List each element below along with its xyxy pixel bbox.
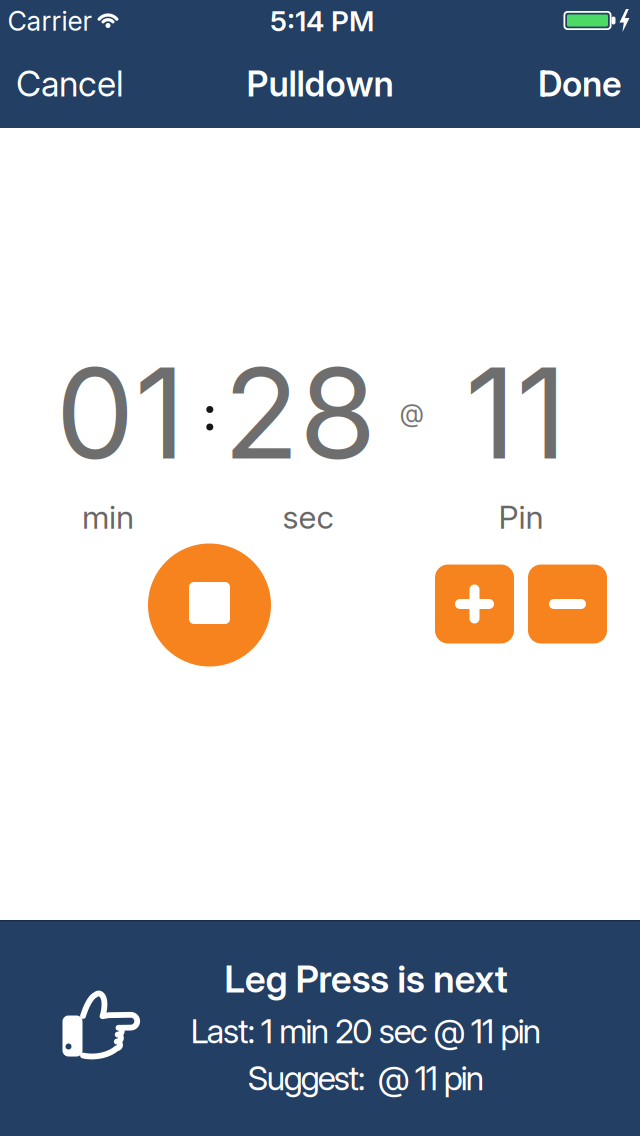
staticText: Done [538, 64, 622, 104]
staticText: Suggest: @ 11 pin [247, 1058, 484, 1098]
button[interactable]: Done [538, 64, 622, 104]
staticText: 11 [465, 339, 567, 487]
staticText: Carrier [7, 5, 92, 37]
staticText: Pin [498, 498, 543, 536]
staticText: min [82, 498, 134, 536]
staticText: Last: 1 min 20 sec @ 11 pin [190, 1011, 542, 1051]
staticText: Pulldown [246, 64, 393, 104]
staticText: Leg Press is next [224, 957, 508, 1001]
staticText: 5:14 PM [270, 4, 374, 37]
staticText: 28 [223, 339, 377, 487]
staticText: 01 [55, 339, 185, 487]
staticText: Cancel [16, 64, 124, 104]
button[interactable] [148, 543, 271, 666]
staticText: @ [399, 398, 424, 428]
button[interactable] [528, 564, 607, 643]
button[interactable]: Cancel [16, 64, 124, 104]
button[interactable] [435, 564, 514, 643]
staticText: sec [282, 498, 333, 536]
